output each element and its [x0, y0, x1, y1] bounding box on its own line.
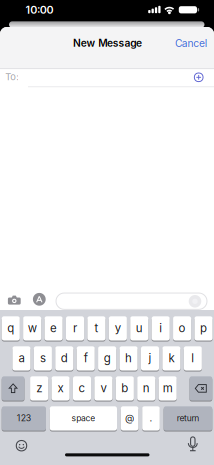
staticText: k [168, 351, 174, 365]
button[interactable]: y [109, 316, 127, 342]
button[interactable]: c [73, 376, 91, 402]
button[interactable]: p [194, 316, 213, 342]
button[interactable]: w [23, 316, 41, 342]
staticText: New Message [73, 37, 142, 49]
staticText: v [100, 381, 106, 395]
staticText: x [58, 381, 64, 395]
button[interactable]: u [130, 316, 148, 342]
staticText: p [200, 321, 207, 335]
staticText: q [7, 321, 14, 335]
button[interactable]: l [184, 346, 202, 372]
button[interactable]: Apps [33, 293, 46, 306]
button[interactable]: j [141, 346, 159, 372]
button[interactable]: z [30, 376, 48, 402]
button[interactable]: i [152, 316, 170, 342]
staticText: h [125, 351, 132, 365]
button[interactable]: . [142, 406, 160, 432]
button[interactable]: f [77, 346, 95, 372]
staticText: z [36, 381, 42, 395]
button[interactable]: Shift [2, 376, 24, 402]
staticText: s [40, 351, 46, 365]
button[interactable]: space [50, 406, 117, 432]
button[interactable]: v [94, 376, 112, 402]
staticText: y [115, 321, 121, 335]
button[interactable]: m [159, 376, 177, 402]
staticText: b [121, 381, 128, 395]
staticText: @ [125, 412, 134, 424]
staticText: To: [5, 71, 19, 82]
button[interactable]: k [162, 346, 180, 372]
button[interactable]: n [137, 376, 155, 402]
staticText: r [73, 321, 77, 335]
staticText: space [71, 413, 95, 423]
button[interactable]: q [2, 316, 20, 342]
staticText: m [163, 381, 173, 395]
button[interactable]: Dictation [187, 436, 199, 451]
button[interactable]: r [66, 316, 84, 342]
staticText: d [61, 351, 68, 365]
button[interactable]: return [164, 406, 212, 432]
staticText: w [28, 321, 37, 335]
staticText: f [84, 351, 88, 365]
button[interactable]: Add Contact [194, 73, 203, 82]
button[interactable]: iMessage [56, 293, 207, 309]
staticText: n [143, 381, 150, 395]
button[interactable]: d [55, 346, 73, 372]
staticText: i [159, 321, 162, 335]
staticText: g [104, 351, 111, 365]
button[interactable]: x [51, 376, 70, 402]
button[interactable]: a [12, 346, 30, 372]
staticText: t [94, 321, 98, 335]
button[interactable]: Emoji [16, 440, 27, 451]
button[interactable]: g [98, 346, 116, 372]
button[interactable]: e [44, 316, 63, 342]
staticText: e [50, 321, 57, 335]
button[interactable]: b [116, 376, 134, 402]
staticText: o [179, 321, 186, 335]
staticText: . [149, 412, 152, 424]
staticText: 10:00 [25, 3, 53, 16]
button[interactable]: @ [121, 406, 138, 432]
button[interactable]: Delete [189, 376, 212, 402]
button[interactable]: s [34, 346, 52, 372]
button[interactable]: 123 [2, 406, 46, 432]
button[interactable]: Camera [8, 294, 21, 305]
staticText: 123 [17, 413, 31, 423]
staticText: u [136, 321, 143, 335]
staticText: return [177, 413, 199, 423]
button[interactable]: h [119, 346, 138, 372]
button[interactable]: o [173, 316, 191, 342]
staticText: Cancel [175, 37, 207, 49]
staticText: l [191, 351, 194, 365]
button[interactable]: Cancel [175, 37, 207, 49]
staticText: a [18, 351, 24, 365]
staticText: j [148, 351, 151, 365]
button[interactable]: t [87, 316, 105, 342]
staticText: c [78, 381, 85, 395]
